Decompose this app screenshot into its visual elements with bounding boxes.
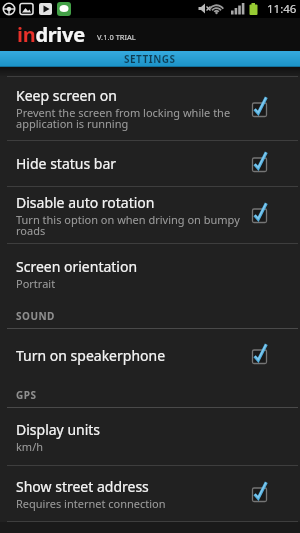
staticText: V.1.0 TRIAL <box>97 32 136 42</box>
staticText: Portrait <box>16 276 56 291</box>
staticText: indrive <box>17 21 85 48</box>
staticText: Turn this option on when driving on bump… <box>16 212 240 238</box>
staticText: Disable auto rotation <box>16 193 155 212</box>
button[interactable]: Hide status bar <box>0 141 300 186</box>
staticText: Requires internet connection <box>16 496 166 511</box>
button[interactable]: Keep screen on <box>0 77 300 140</box>
button[interactable] <box>242 187 300 243</box>
staticText: Hide status bar <box>16 154 117 173</box>
staticText: Prevent the screen from locking while th… <box>16 105 231 131</box>
button[interactable]: Disable auto rotation <box>0 187 300 243</box>
staticText: Show street address <box>16 477 149 496</box>
button[interactable] <box>242 329 300 382</box>
button[interactable]: Display units <box>0 408 300 465</box>
staticText: SOUND <box>16 309 55 323</box>
staticText: SETTINGS <box>124 52 176 66</box>
button[interactable]: Turn on speakerphone <box>0 329 300 382</box>
staticText: Display units <box>16 420 101 439</box>
staticText: 11:46 <box>267 1 297 17</box>
staticText: km/h <box>16 439 44 454</box>
staticText: Turn on speakerphone <box>16 346 166 365</box>
button[interactable]: Show street address <box>0 466 300 521</box>
staticText: GPS <box>16 388 37 402</box>
button[interactable]: Screen orientation <box>0 244 300 304</box>
button[interactable]: SETTINGS <box>0 51 300 67</box>
staticText: Keep screen on <box>16 86 117 105</box>
button[interactable] <box>242 77 300 140</box>
button[interactable] <box>242 466 300 521</box>
button[interactable] <box>242 141 300 186</box>
staticText: Screen orientation <box>16 257 138 276</box>
